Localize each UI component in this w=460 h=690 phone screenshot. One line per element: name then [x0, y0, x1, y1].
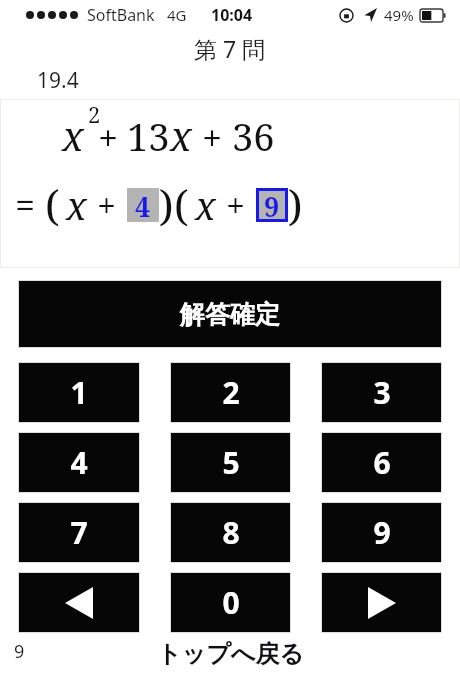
staticText: 19.4	[37, 66, 79, 94]
button[interactable]: 6	[321, 432, 442, 493]
button[interactable]: 9	[321, 502, 442, 563]
button[interactable]: 9	[256, 188, 288, 222]
button[interactable]: 3	[321, 362, 442, 423]
staticText: 8	[222, 512, 240, 553]
staticText: x	[66, 179, 87, 231]
staticText: 6	[373, 442, 391, 483]
staticText: x	[195, 179, 216, 231]
button[interactable]: 7	[18, 502, 140, 563]
staticText: 第 7 問	[194, 33, 266, 64]
staticText: 解答確定	[180, 299, 280, 330]
staticText: )	[159, 176, 174, 233]
staticText: (	[174, 176, 189, 233]
staticText: 3	[373, 372, 391, 413]
button[interactable]: 5	[170, 432, 291, 493]
staticText: +	[97, 182, 117, 228]
staticText: 49%	[384, 5, 414, 25]
button[interactable]: 2	[170, 362, 291, 423]
button[interactable]: 1	[18, 362, 140, 423]
staticText: 36	[232, 110, 275, 162]
button[interactable]: Previous	[18, 572, 140, 633]
staticText: 7	[70, 512, 88, 553]
staticText: 2	[222, 372, 240, 413]
staticText: SoftBank	[87, 4, 155, 26]
staticText: (	[45, 176, 60, 233]
staticText: 10:04	[211, 4, 253, 26]
button[interactable]: トップへ戻る	[157, 639, 304, 669]
button[interactable]: 4	[18, 432, 140, 493]
staticText: 13	[127, 110, 170, 162]
button[interactable]: Next	[321, 572, 442, 633]
button[interactable]: 8	[170, 502, 291, 563]
staticText: 9	[264, 188, 280, 222]
staticText: 0	[222, 582, 240, 623]
button[interactable]: 0	[170, 572, 291, 633]
staticText: x	[170, 108, 192, 162]
staticText: 9	[14, 639, 25, 664]
staticText: 9	[373, 512, 391, 553]
staticText: x	[62, 108, 84, 162]
button[interactable]: 解答確定	[18, 280, 442, 348]
staticText: 4	[135, 188, 151, 222]
staticText: )	[288, 176, 303, 233]
staticText: 4	[70, 442, 88, 483]
staticText: 1	[70, 372, 88, 413]
staticText: +	[202, 113, 223, 162]
staticText: 2	[88, 99, 101, 129]
staticText: +	[98, 113, 119, 162]
staticText: トップへ戻る	[157, 639, 304, 669]
staticText: 5	[222, 442, 240, 483]
staticText: 4G	[167, 5, 187, 25]
staticText: =	[15, 180, 36, 229]
staticText: +	[226, 182, 246, 228]
button[interactable]: 4	[127, 188, 159, 222]
